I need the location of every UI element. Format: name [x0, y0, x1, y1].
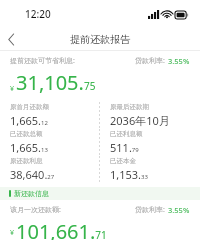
- button[interactable]: 返回: [0, 28, 22, 50]
- staticText: 3.55%: [168, 205, 190, 215]
- staticText: 3.55%: [168, 56, 190, 66]
- staticText: 提前还款报告: [70, 33, 130, 46]
- staticText: ¥: [10, 84, 15, 94]
- staticText: 511.79: [110, 140, 139, 155]
- staticText: 31,105.75: [16, 69, 96, 96]
- staticText: 1,153.33: [110, 167, 148, 182]
- staticText: 该月一次还款额:: [10, 205, 61, 215]
- staticText: 已还本金: [110, 157, 136, 165]
- staticText: 12:20: [25, 7, 51, 21]
- staticText: 已还利息额: [110, 130, 143, 138]
- staticText: 2036年10月: [110, 113, 170, 128]
- staticText: 提前还款可节省利息:: [10, 56, 75, 66]
- staticText: 101,661.71: [16, 218, 107, 240]
- staticText: 原还款利息: [10, 157, 43, 165]
- staticText: 已还款总额: [10, 130, 43, 138]
- staticText: ¥: [10, 228, 15, 238]
- staticText: 1,665.12: [10, 113, 48, 128]
- staticText: 原最后还款期: [110, 103, 149, 111]
- staticText: 38,640.27: [10, 167, 55, 182]
- staticText: 新还款信息: [14, 189, 49, 198]
- staticText: 贷款利率:: [135, 205, 165, 215]
- staticText: 贷款利率:: [135, 56, 165, 66]
- staticText: 原首月还款额: [10, 103, 49, 111]
- staticText: 1,665.13: [10, 140, 48, 155]
